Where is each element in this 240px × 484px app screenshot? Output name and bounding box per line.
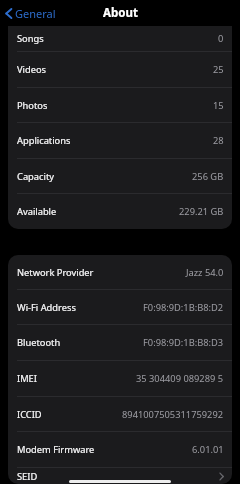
staticText: Network Provider (17, 266, 94, 279)
button[interactable]: Network Provider (8, 255, 232, 289)
button[interactable]: ICCID (8, 397, 232, 431)
button[interactable]: Bluetooth (8, 325, 232, 360)
staticText: 0 (218, 32, 224, 45)
staticText: F0:98:9D:1B:B8:D3 (143, 336, 224, 349)
staticText: 35 304409 089289 5 (136, 372, 224, 385)
button[interactable]: Back to General (0, 2, 62, 25)
staticText: General (15, 6, 56, 21)
staticText: 25 (213, 63, 224, 76)
button[interactable]: Videos (8, 52, 232, 87)
button[interactable]: Modem Firmware (8, 432, 232, 467)
staticText: Wi-Fi Address (17, 301, 76, 314)
staticText: Songs (17, 32, 44, 45)
button[interactable]: Available (8, 194, 232, 229)
staticText: Bluetooth (17, 336, 61, 349)
staticText: SEID (17, 470, 38, 483)
button[interactable]: Photos (8, 88, 232, 122)
staticText: Videos (17, 63, 47, 76)
staticText: Available (17, 205, 57, 218)
staticText: Photos (17, 99, 48, 112)
staticText: 28 (213, 134, 224, 147)
staticText: F0:98:9D:1B:B8:D2 (143, 301, 224, 314)
staticText: Applications (17, 134, 71, 147)
button[interactable]: Capacity (8, 159, 232, 193)
button[interactable]: Wi-Fi Address (8, 290, 232, 324)
staticText: About (103, 5, 138, 21)
button[interactable]: Songs (8, 26, 232, 51)
staticText: Modem Firmware (17, 443, 95, 456)
button[interactable]: SEID (8, 468, 232, 484)
staticText: 229.21 GB (179, 205, 224, 218)
staticText: Capacity (17, 170, 54, 183)
staticText: 15 (213, 99, 224, 112)
staticText: 8941007505311759292 (122, 408, 224, 421)
button[interactable]: IMEI (8, 361, 232, 396)
staticText: 256 GB (192, 170, 224, 183)
button[interactable]: Applications (8, 123, 232, 158)
staticText: 6.01.01 (192, 443, 224, 456)
staticText: Jazz 54.0 (186, 266, 224, 279)
staticText: IMEI (17, 372, 37, 385)
staticText: ICCID (17, 408, 42, 421)
